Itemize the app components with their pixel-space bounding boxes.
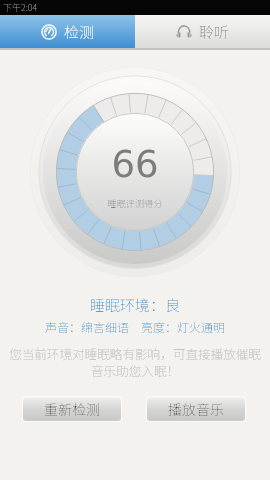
staticText: 睡眠评测得分 bbox=[0, 196, 270, 209]
staticText: 66 bbox=[0, 143, 270, 186]
staticText: 重新检测 bbox=[44, 399, 100, 419]
staticText: 下午2:04 bbox=[3, 1, 38, 14]
button[interactable]: 重新检测 bbox=[23, 397, 121, 421]
staticText: 检测 bbox=[64, 21, 95, 43]
staticText: 您当前环境对睡眠略有影响，可直接播放催眠 音乐助您入眠！ bbox=[8, 344, 262, 379]
staticText: 声音：绵言细语 亮度：灯火通明 bbox=[0, 318, 270, 335]
button[interactable]: 聆听 bbox=[135, 15, 270, 48]
button[interactable]: 检测 bbox=[0, 15, 135, 48]
button[interactable]: 播放音乐 bbox=[147, 397, 245, 421]
staticText: 聆听 bbox=[199, 21, 230, 43]
staticText: 睡眠环境：良 bbox=[0, 294, 270, 316]
staticText: 播放音乐 bbox=[168, 399, 224, 419]
